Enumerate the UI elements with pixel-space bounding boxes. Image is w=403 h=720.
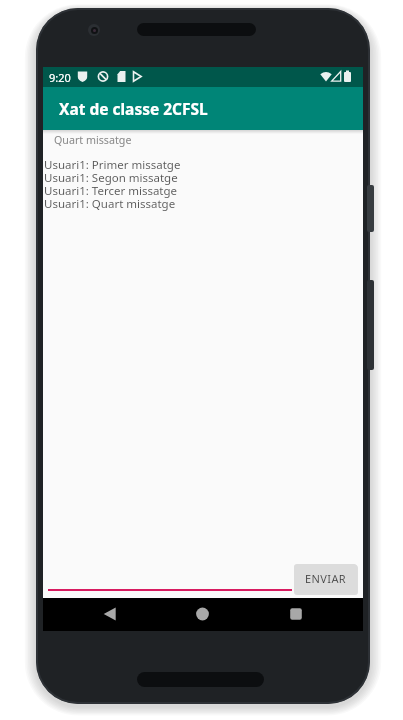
button[interactable] xyxy=(43,598,149,631)
button[interactable] xyxy=(256,598,363,631)
staticText: Usuari1: Primer missatge Usuari1: Segon … xyxy=(44,157,181,212)
staticText: ENVIAR xyxy=(305,571,347,586)
staticText: Xat de classe 2CFSL xyxy=(59,98,208,119)
button[interactable]: Quart missatge xyxy=(54,133,132,148)
button[interactable] xyxy=(149,598,256,631)
staticText: 9:20 xyxy=(49,70,71,85)
button[interactable]: ENVIAR xyxy=(294,564,357,593)
